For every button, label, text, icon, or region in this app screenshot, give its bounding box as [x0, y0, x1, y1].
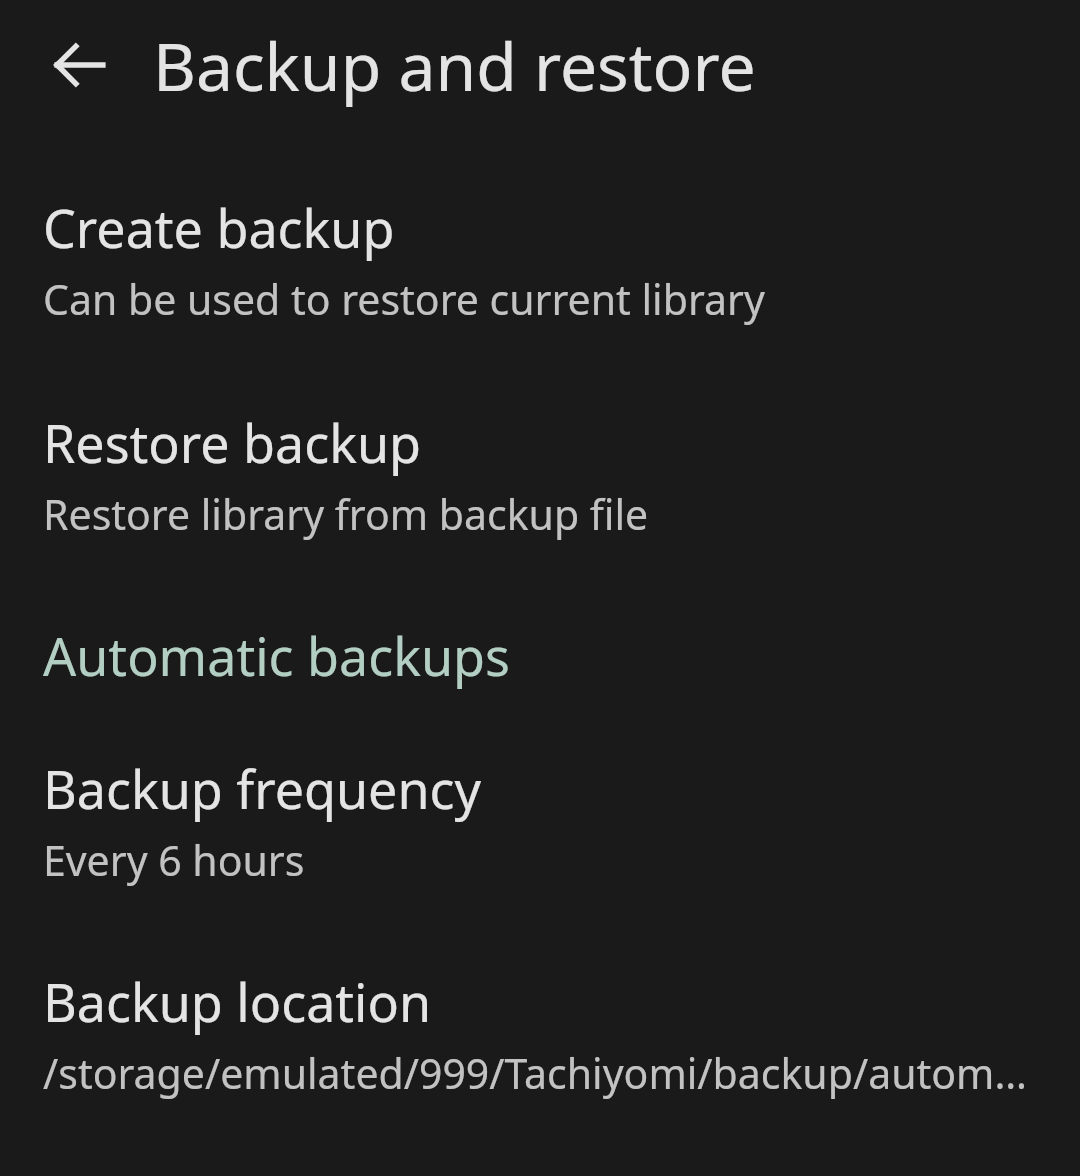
staticText: Restore library from backup file	[43, 486, 649, 542]
button[interactable]: Create backup	[0, 192, 1080, 327]
staticText: Backup and restore	[153, 20, 756, 110]
staticText: /storage/emulated/999/Tachiyomi/backup/a…	[43, 1045, 1037, 1101]
staticText: Automatic backups	[43, 620, 510, 691]
staticText: Every 6 hours	[43, 832, 305, 888]
button[interactable]: Backup frequency	[0, 753, 1080, 888]
staticText: Create backup	[43, 192, 395, 263]
button[interactable]: Backup location	[0, 966, 1080, 1101]
button[interactable]: Back	[34, 19, 126, 111]
staticText: Can be used to restore current library	[43, 271, 765, 327]
staticText: Backup frequency	[43, 753, 482, 824]
staticText: Backup location	[43, 966, 432, 1037]
staticText: Restore backup	[43, 407, 422, 478]
button[interactable]: Restore backup	[0, 407, 1080, 542]
